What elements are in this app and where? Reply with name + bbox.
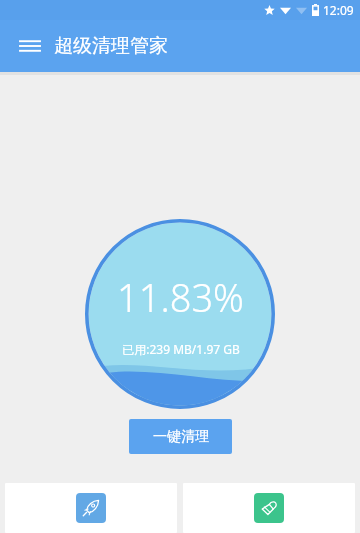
- staticText: 12:09: [323, 2, 354, 18]
- staticText: 11.83%: [117, 271, 244, 323]
- button[interactable]: Clean: [183, 483, 355, 533]
- staticText: 超级清理管家: [54, 34, 168, 58]
- button[interactable]: Boost: [5, 483, 177, 533]
- button[interactable]: Menu: [10, 26, 50, 66]
- staticText: 一键清理: [153, 428, 209, 446]
- staticText: 已用:239 MB/1.97 GB: [122, 341, 240, 357]
- button[interactable]: 一键清理: [129, 419, 232, 454]
